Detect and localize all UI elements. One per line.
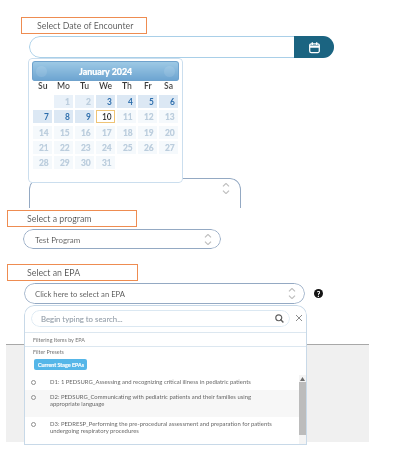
staticText: Fr [144,81,152,91]
staticText: Th [122,81,132,91]
button[interactable]: 11 [117,110,136,123]
staticText: 20 [165,128,175,138]
button[interactable]: Previous month [36,66,47,77]
staticText: 26 [144,143,154,153]
button[interactable]: 15 [54,126,73,139]
button[interactable]: 25 [117,141,136,154]
button[interactable]: 13 [159,110,178,123]
staticText: We [99,81,113,91]
staticText: 4 [128,97,133,107]
staticText: D3: PEDRESP_Performing the pre-procedura… [50,420,272,427]
button[interactable]: Test Program [23,229,221,249]
staticText: 16 [81,128,91,138]
button[interactable]: 29 [54,156,73,169]
button[interactable]: 24 [96,141,115,154]
staticText: 22 [60,143,70,153]
staticText: 6 [170,97,175,107]
staticText: 8 [65,112,70,122]
staticText: 1 [65,97,70,107]
button[interactable]: 26 [138,141,157,154]
button[interactable]: 17 [96,126,115,139]
staticText: Filtering Items by EPA [33,337,85,343]
button[interactable]: 12 [138,110,157,123]
staticText: 15 [60,128,70,138]
staticText: Select a program [27,213,92,224]
staticText: 19 [144,128,154,138]
staticText: Test Program [35,235,81,244]
staticText: 23 [81,143,91,153]
button[interactable]: 28 [33,156,52,169]
button[interactable]: Date of encounter [29,36,334,58]
staticText: Click here to select an EPA [35,289,126,298]
button[interactable]: 5 [138,95,157,108]
button[interactable]: 9 [75,110,94,123]
staticText: Su [38,81,48,91]
staticText: 25 [123,143,133,153]
button[interactable]: 19 [138,126,157,139]
staticText: 14 [39,128,49,138]
button[interactable]: Select Date of Encounter [21,17,147,34]
staticText: Select an EPA [27,267,81,278]
button[interactable]: Clear search [293,312,305,324]
staticText: Tu [80,81,90,91]
button[interactable]: Select an EPA [7,264,138,281]
button[interactable]: 18 [117,126,136,139]
staticText: 17 [102,128,112,138]
button[interactable]: Select a program [7,210,137,227]
staticText: 13 [165,112,175,122]
staticText: Mo [57,81,70,91]
button[interactable]: 8 [54,110,73,123]
button[interactable]: Open date picker [294,36,334,58]
staticText: D1: 1 PEDSURG_Assessing and recognizing … [50,378,251,385]
staticText: 3 [107,97,112,107]
staticText: D2: PEDSURG_Communicating with pediatric… [50,393,252,400]
button[interactable]: 27 [159,141,178,154]
staticText: 2 [86,97,91,107]
staticText: 24 [102,143,112,153]
button[interactable]: 22 [54,141,73,154]
button[interactable]: Help [314,289,323,298]
button[interactable]: 1 [54,95,73,108]
button[interactable]: D3: PEDRESP_Performing the pre-procedura… [24,417,307,444]
staticText: 5 [149,97,154,107]
button[interactable]: 6 [159,95,178,108]
button[interactable]: Begin typing to search... [31,310,290,327]
staticText: 18 [123,128,133,138]
staticText: 28 [39,158,49,168]
button[interactable]: 2 [75,95,94,108]
staticText: 10 [102,112,112,122]
button[interactable]: Click here to select an EPA [24,283,305,304]
button[interactable]: 7 [33,110,52,123]
staticText: 9 [86,112,91,122]
staticText: Select Date of Encounter [37,20,134,31]
button[interactable]: 30 [75,156,94,169]
staticText: 30 [81,158,91,168]
button[interactable]: 14 [33,126,52,139]
button[interactable]: 21 [33,141,52,154]
button[interactable]: 20 [159,126,178,139]
button[interactable]: 16 [75,126,94,139]
button[interactable]: 3 [96,95,115,108]
button[interactable]: D2: PEDSURG_Communicating with pediatric… [24,390,307,417]
staticText: Filter Presets [33,349,64,355]
other: Search [275,314,284,323]
staticText: 29 [60,158,70,168]
button[interactable]: 31 [96,156,115,169]
button[interactable]: 10 [96,110,115,123]
staticText: 27 [165,143,175,153]
staticText: appropriate language [50,400,105,407]
staticText: undergoing respiratory procedures [50,427,139,434]
button[interactable]: D1: 1 PEDSURG_Assessing and recognizing … [24,375,307,390]
staticText: 21 [39,143,49,153]
button[interactable]: Current Stage EPAs [34,359,87,370]
staticText: 7 [44,112,49,122]
staticText: 12 [144,112,154,122]
staticText: ? [317,290,321,298]
staticText: January 2024 [79,66,133,77]
button[interactable]: Next month [164,66,175,77]
staticText: 31 [102,158,112,168]
staticText: Begin typing to search... [41,314,123,323]
staticText: Current Stage EPAs [38,362,84,368]
button[interactable]: 23 [75,141,94,154]
button[interactable]: 4 [117,95,136,108]
